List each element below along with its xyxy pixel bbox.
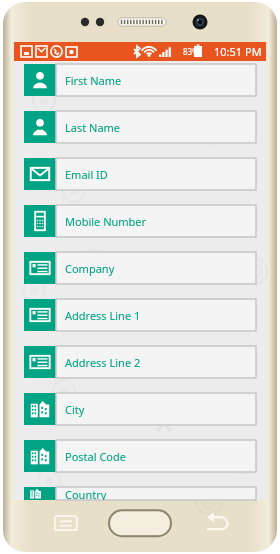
staticText: Mobile Number	[65, 214, 147, 229]
other: City	[24, 393, 56, 425]
staticText: 10:51 PM	[214, 44, 262, 59]
staticText: Postal Code	[65, 449, 126, 464]
staticText: Company	[65, 261, 115, 276]
other: Mobile Number	[24, 205, 56, 237]
staticText: Address Line 2	[65, 355, 141, 370]
button[interactable]: Address Line 1	[24, 299, 256, 331]
staticText: Email ID	[65, 167, 108, 182]
other: Email ID	[24, 158, 56, 190]
staticText: Last Name	[65, 120, 121, 135]
button[interactable]: Company	[24, 252, 256, 284]
button[interactable]: Mobile Number	[24, 205, 256, 237]
button[interactable]: Country	[24, 487, 256, 500]
other: First Name	[24, 64, 56, 96]
staticText: City	[65, 402, 85, 417]
staticText: Country	[65, 487, 107, 500]
other: Company	[24, 252, 56, 284]
staticText: 83%	[183, 46, 199, 57]
other: Last Name	[24, 111, 56, 143]
other: Address Line 1	[24, 299, 56, 331]
other: Postal Code	[24, 440, 56, 472]
button[interactable]: Email ID	[24, 158, 256, 190]
staticText: Address Line 1	[65, 308, 141, 323]
button[interactable]: Postal Code	[24, 440, 256, 472]
button[interactable]: Last Name	[24, 111, 256, 143]
button[interactable]: First Name	[24, 64, 256, 96]
button[interactable]: Address Line 2	[24, 346, 256, 378]
other: Address Line 2	[24, 346, 56, 378]
staticText: First Name	[65, 73, 122, 88]
other: Country	[24, 487, 56, 500]
button[interactable]: City	[24, 393, 256, 425]
